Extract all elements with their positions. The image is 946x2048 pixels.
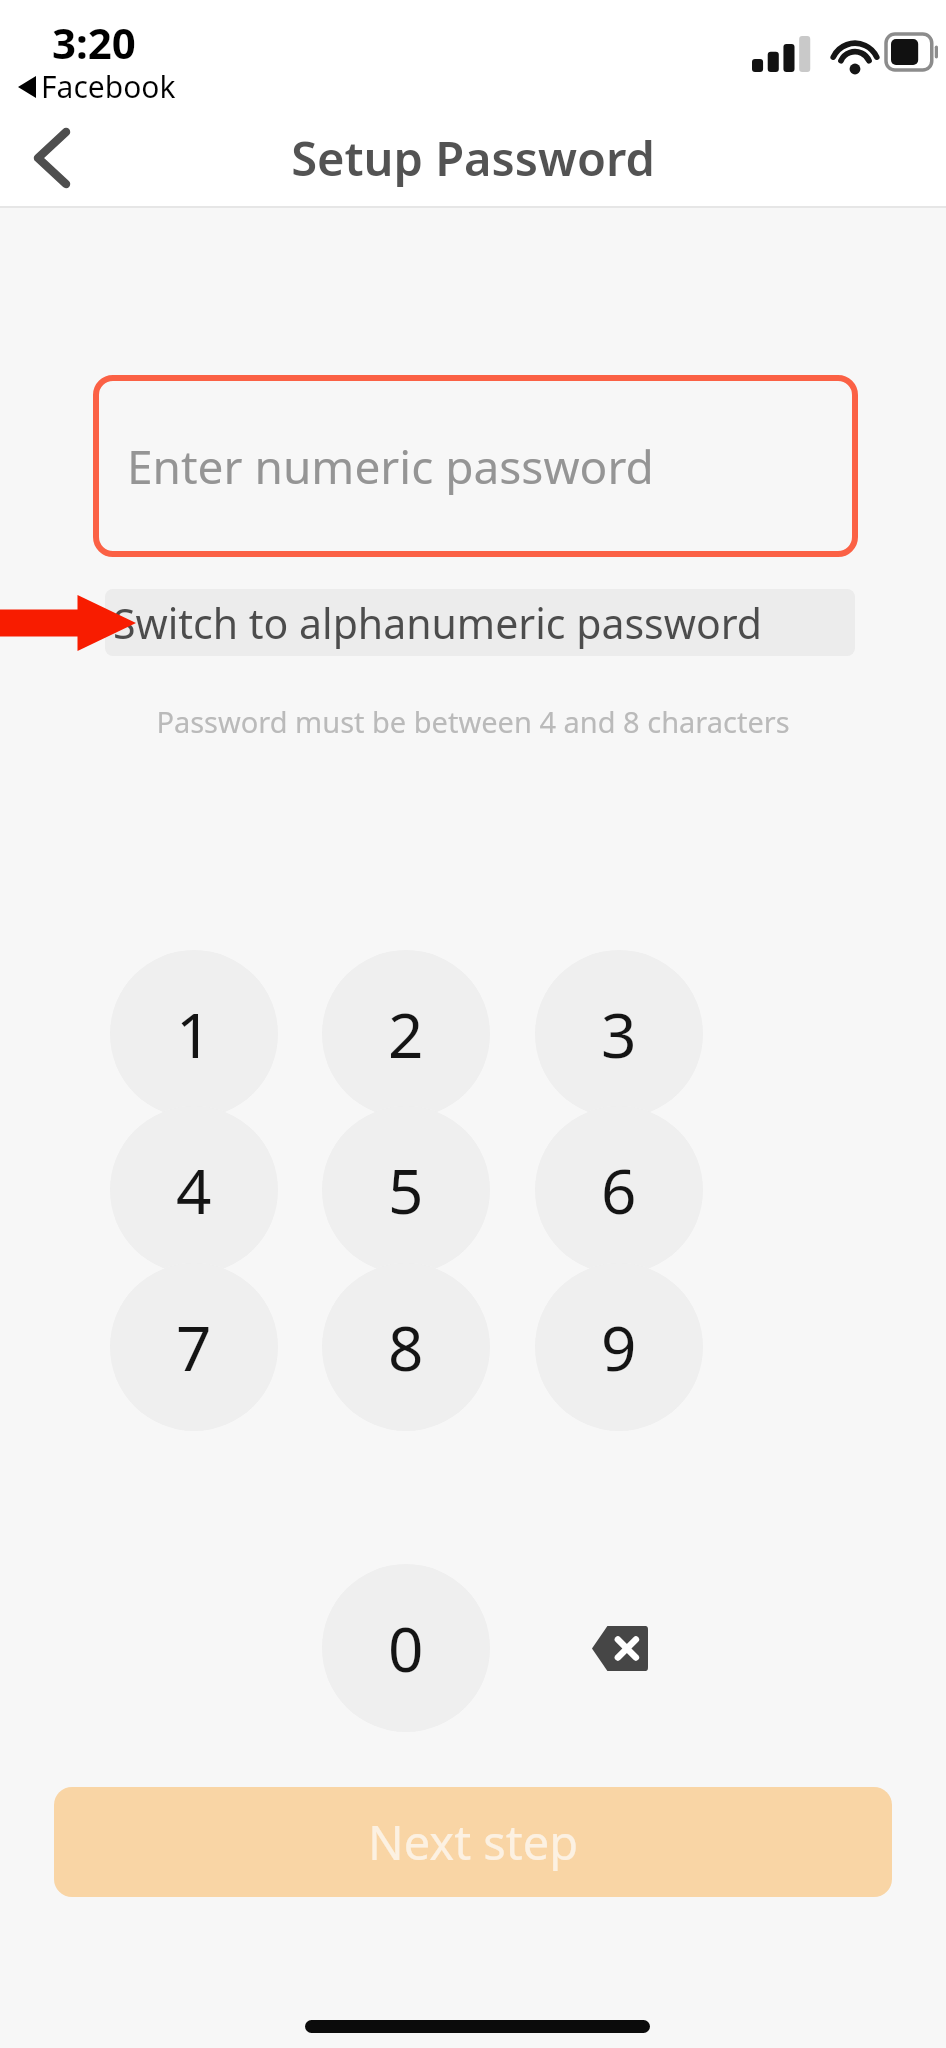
staticText: Setup Password	[0, 126, 946, 190]
button[interactable]: 0	[322, 1564, 490, 1732]
button[interactable]: 7	[110, 1263, 278, 1431]
button[interactable]: 8	[322, 1263, 490, 1431]
button[interactable]: 4	[110, 1106, 278, 1274]
staticText: 1	[176, 992, 212, 1076]
staticText: 5	[388, 1148, 424, 1232]
staticText: Enter numeric password	[127, 435, 654, 498]
button[interactable]: 6	[535, 1106, 703, 1274]
staticText: 0	[388, 1606, 424, 1690]
staticText: 8	[388, 1305, 424, 1389]
button[interactable]: Enter numeric password	[93, 375, 858, 557]
staticText: Password must be between 4 and 8 charact…	[0, 702, 946, 741]
staticText: Switch to alphanumeric password	[113, 595, 763, 651]
staticText: Next step	[368, 1810, 579, 1874]
button[interactable]: 9	[535, 1263, 703, 1431]
button[interactable]: Switch to alphanumeric password	[105, 589, 855, 656]
staticText: 3:20	[52, 14, 136, 71]
button[interactable]: 3	[535, 950, 703, 1118]
button[interactable]: Next step	[54, 1787, 892, 1897]
button[interactable]: 5	[322, 1106, 490, 1274]
staticText: 3	[601, 992, 637, 1076]
button[interactable]: Backspace	[535, 1564, 703, 1732]
staticText: 7	[176, 1305, 212, 1389]
button[interactable]: 2	[322, 950, 490, 1118]
staticText: 2	[388, 992, 424, 1076]
staticText: 6	[601, 1148, 637, 1232]
staticText: 9	[601, 1305, 637, 1389]
staticText: 4	[176, 1148, 212, 1232]
button[interactable]: Back	[6, 110, 96, 206]
staticText: Facebook	[41, 66, 176, 107]
button[interactable]: 1	[110, 950, 278, 1118]
